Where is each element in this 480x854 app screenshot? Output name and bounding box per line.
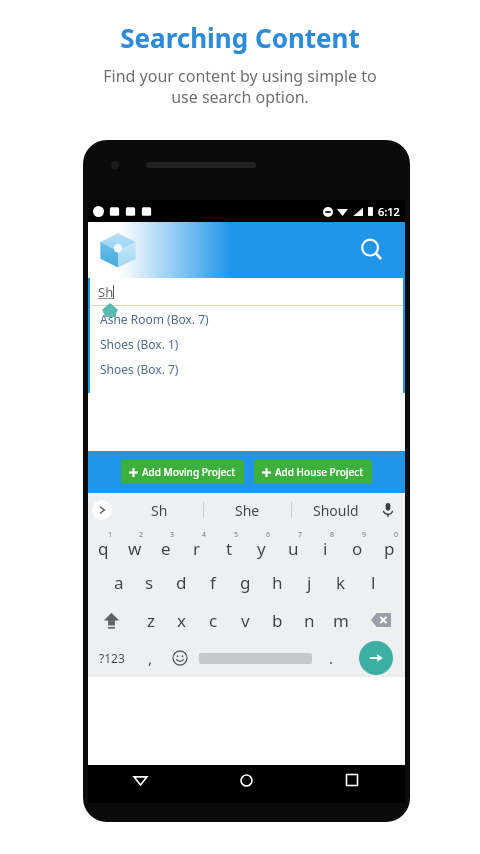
staticText: v xyxy=(241,609,250,632)
staticText: h xyxy=(272,571,283,594)
button[interactable]: 9 xyxy=(341,527,373,564)
button[interactable]: 8 xyxy=(309,527,341,564)
button[interactable]: Back xyxy=(88,765,193,795)
button[interactable]: Ashe Room (Box. 7) xyxy=(90,306,403,331)
button[interactable]: s xyxy=(134,564,165,601)
button[interactable]: Voice input xyxy=(377,499,399,521)
staticText: j xyxy=(307,571,312,594)
button[interactable]: a xyxy=(103,564,134,601)
staticText: o xyxy=(352,537,363,560)
staticText: Should xyxy=(313,501,359,520)
button[interactable]: l xyxy=(357,564,389,601)
button[interactable]: 7 xyxy=(277,527,309,564)
button[interactable]: Enter xyxy=(346,639,405,677)
button[interactable]: , xyxy=(136,639,165,677)
staticText: 8 xyxy=(330,530,335,540)
staticText: . xyxy=(329,648,334,668)
staticText: 1 xyxy=(108,530,113,540)
staticText: y xyxy=(257,537,266,560)
button[interactable]: Space xyxy=(194,639,317,677)
button[interactable]: ?123 xyxy=(88,639,136,677)
button[interactable]: Shift xyxy=(88,601,135,639)
staticText: 3 xyxy=(170,530,175,540)
staticText: b xyxy=(272,609,283,632)
button[interactable]: Backspace xyxy=(357,601,405,639)
button[interactable]: . xyxy=(317,639,346,677)
staticText: She xyxy=(235,501,260,520)
staticText: z xyxy=(147,609,155,632)
button[interactable]: Sh xyxy=(116,493,203,527)
staticText: c xyxy=(209,609,218,632)
button[interactable]: 2 xyxy=(119,527,150,564)
staticText: u xyxy=(288,537,299,560)
button[interactable]: Shoes (Box. 1) xyxy=(90,331,403,356)
staticText: 7 xyxy=(298,530,303,540)
button[interactable]: d xyxy=(165,564,197,601)
button[interactable]: Shoes (Box. 7) xyxy=(90,356,403,381)
button[interactable]: n xyxy=(293,601,325,639)
staticText: n xyxy=(304,609,315,632)
button[interactable]: f xyxy=(197,564,229,601)
staticText: e xyxy=(161,537,171,560)
staticText: i xyxy=(323,537,328,560)
button[interactable]: Home xyxy=(193,765,299,795)
staticText: Shoes (Box. 1) xyxy=(100,336,179,352)
button[interactable]: Recents xyxy=(299,765,405,795)
staticText: Sh xyxy=(98,283,114,301)
staticText: g xyxy=(240,571,251,594)
button[interactable]: b xyxy=(261,601,293,639)
staticText: Add House Project xyxy=(275,465,364,479)
button[interactable]: h xyxy=(261,564,293,601)
staticText: p xyxy=(384,537,395,560)
button[interactable]: z xyxy=(135,601,166,639)
button[interactable]: Should xyxy=(292,493,379,527)
staticText: m xyxy=(333,609,349,632)
staticText: d xyxy=(176,571,187,594)
button[interactable]: Emoji xyxy=(165,639,194,677)
button[interactable]: c xyxy=(197,601,229,639)
button[interactable]: 4 xyxy=(181,527,213,564)
staticText: Shoes (Box. 7) xyxy=(100,361,179,377)
staticText: r xyxy=(193,537,201,560)
staticText: f xyxy=(210,571,216,594)
staticText: 2 xyxy=(139,530,144,540)
staticText: 4 xyxy=(202,530,207,540)
button[interactable]: g xyxy=(229,564,261,601)
button[interactable]: Expand suggestions xyxy=(92,500,112,520)
button[interactable]: k xyxy=(325,564,357,601)
button[interactable]: 0 xyxy=(373,527,405,564)
staticText: 9 xyxy=(362,530,367,540)
button[interactable]: Add Moving Project xyxy=(121,460,244,484)
button[interactable]: v xyxy=(229,601,261,639)
staticText: Add Moving Project xyxy=(142,465,236,479)
staticText: , xyxy=(148,648,153,668)
button[interactable]: m xyxy=(325,601,357,639)
staticText: Searching Content xyxy=(120,20,360,55)
button[interactable]: Add House Project xyxy=(254,460,372,484)
button[interactable]: Search xyxy=(353,231,391,269)
button[interactable]: She xyxy=(204,493,291,527)
button[interactable]: 3 xyxy=(150,527,181,564)
staticText: k xyxy=(336,571,346,594)
staticText: 0 xyxy=(394,530,399,540)
button[interactable]: 1 xyxy=(88,527,119,564)
button[interactable]: x xyxy=(166,601,197,639)
staticText: 5 xyxy=(234,530,239,540)
staticText: 6:12 xyxy=(378,204,400,219)
staticText: s xyxy=(145,571,154,594)
staticText: x xyxy=(177,609,186,632)
staticText: Sh xyxy=(151,501,168,520)
button[interactable]: 6 xyxy=(245,527,277,564)
staticText: q xyxy=(98,537,109,560)
staticText: l xyxy=(371,571,376,594)
staticText: w xyxy=(128,537,142,560)
button[interactable]: Search xyxy=(88,222,405,278)
staticText: 6 xyxy=(266,530,271,540)
button[interactable]: 5 xyxy=(213,527,245,564)
staticText: a xyxy=(114,571,124,594)
staticText: Ashe Room (Box. 7) xyxy=(100,311,209,327)
staticText: t xyxy=(226,537,233,560)
staticText: ?123 xyxy=(99,650,125,666)
staticText: Find your content by using simple to use… xyxy=(103,65,377,108)
button[interactable]: j xyxy=(293,564,325,601)
